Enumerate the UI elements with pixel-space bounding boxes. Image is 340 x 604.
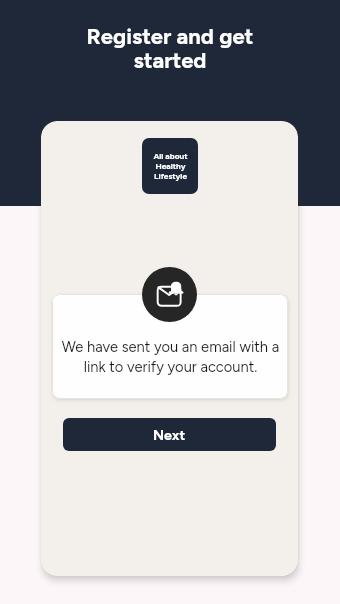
button[interactable]: All about Healthy Lifestyle [142,138,198,194]
staticText: We have sent you an email with a link to… [61,338,280,376]
staticText: All about Healthy Lifestyle [153,151,188,181]
button[interactable]: Email verification notification [142,267,197,322]
staticText: Next [153,426,186,443]
staticText: Register and get started [65,23,275,73]
button[interactable]: Next [63,418,276,451]
